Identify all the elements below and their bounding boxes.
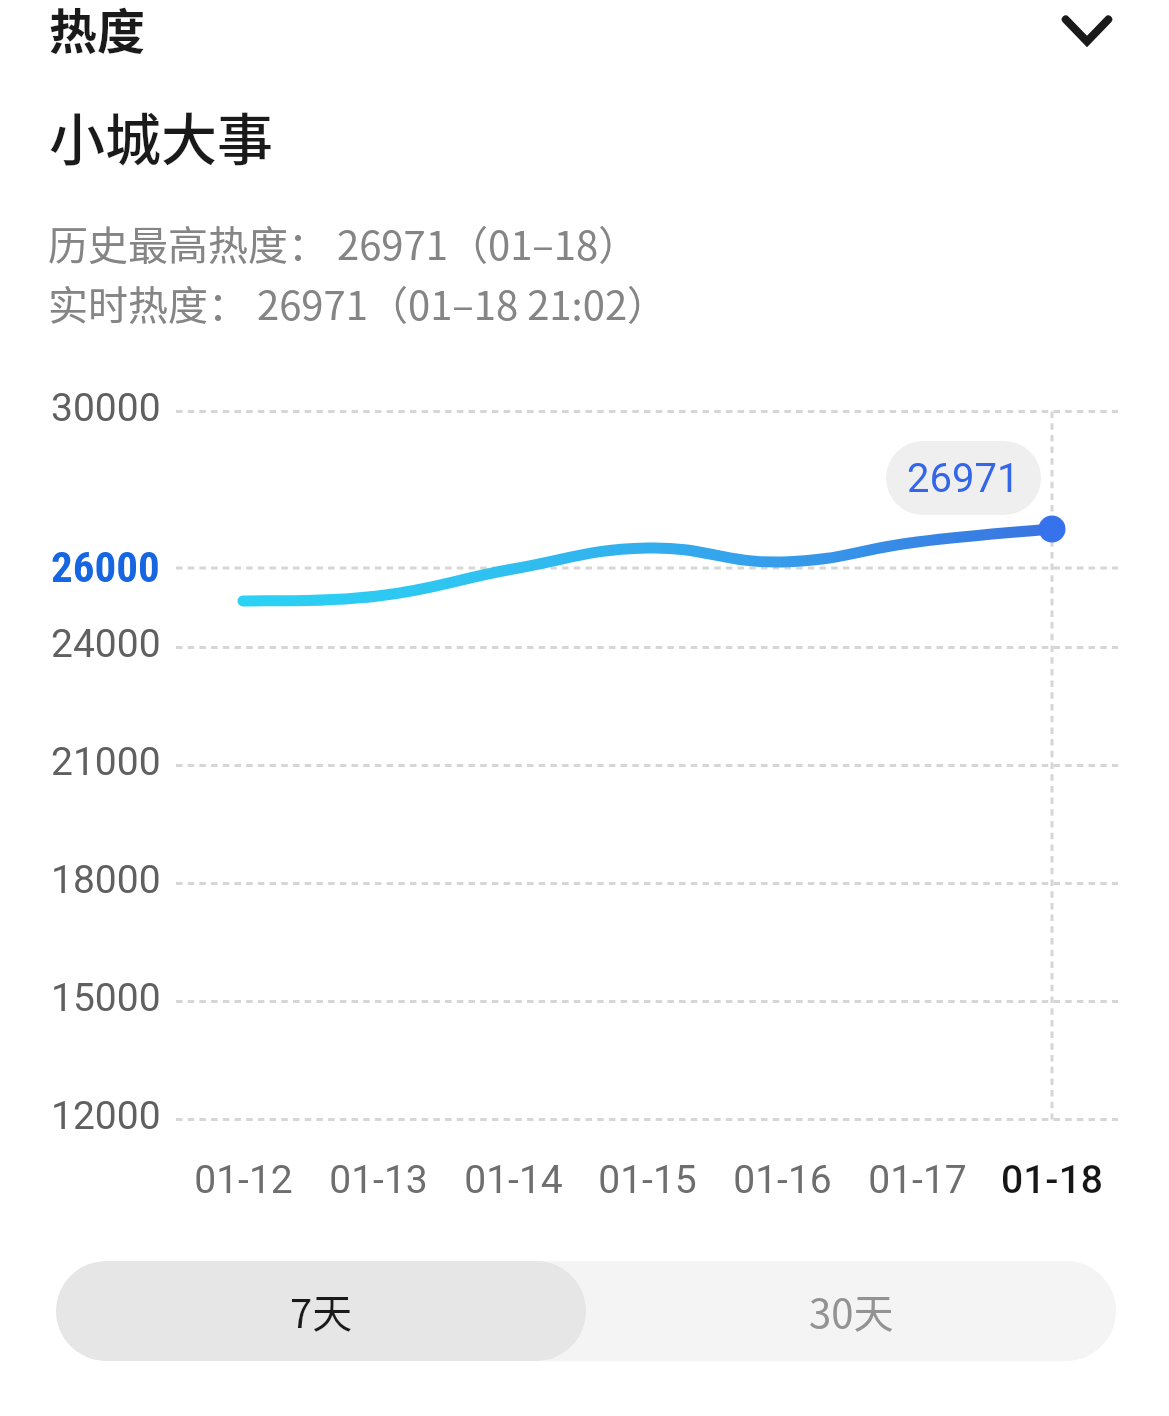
staticText: 01-12 [194, 1157, 293, 1203]
staticText: 18000 [51, 857, 161, 903]
staticText: 01-15 [598, 1157, 697, 1203]
button[interactable]: 26971 [886, 441, 1041, 515]
staticText: 热度 [49, 0, 146, 63]
button[interactable]: Collapse heat chart [1041, 0, 1133, 76]
staticText: 小城大事 [49, 95, 273, 176]
staticText: 7天 [290, 1282, 353, 1340]
staticText: 21000 [51, 739, 161, 785]
staticText: 01-16 [733, 1157, 832, 1203]
staticText: 01-17 [868, 1157, 967, 1203]
staticText: 01-13 [329, 1157, 428, 1203]
staticText: 12000 [51, 1093, 161, 1139]
staticText: 15000 [51, 975, 161, 1021]
staticText: 实时热度： 26971（01–18 21:02） [48, 274, 668, 332]
staticText: 30天 [809, 1282, 894, 1340]
button[interactable]: 7天 [56, 1261, 586, 1361]
staticText: 30000 [51, 385, 161, 431]
staticText: 26000 [51, 542, 160, 592]
button[interactable]: 热度 [0, 0, 1169, 62]
button[interactable]: 30天 [586, 1261, 1116, 1361]
staticText: 24000 [51, 621, 161, 667]
staticText: 历史最高热度： 26971（01–18） [48, 214, 639, 272]
staticText: 26971 [907, 455, 1020, 502]
staticText: 01-18 [1001, 1157, 1103, 1203]
staticText: 01-14 [464, 1157, 563, 1203]
